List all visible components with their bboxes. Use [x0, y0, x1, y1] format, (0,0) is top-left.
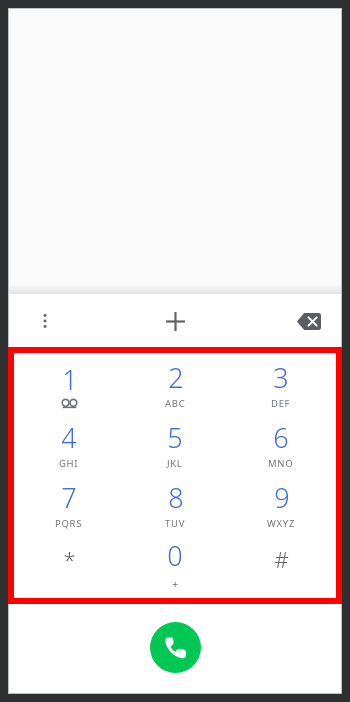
button[interactable]: Add: [151, 297, 199, 345]
button[interactable]: Backspace: [287, 299, 331, 343]
staticText: 0: [167, 537, 183, 574]
staticText: 6: [273, 419, 289, 456]
staticText: 4: [61, 419, 77, 456]
staticText: 1: [62, 361, 78, 398]
staticText: 9: [274, 479, 290, 516]
staticText: DEF: [271, 397, 291, 410]
button[interactable]: 8: [122, 475, 228, 535]
staticText: 8: [168, 479, 184, 516]
button[interactable]: 1: [16, 355, 122, 415]
staticText: *: [63, 544, 76, 574]
staticText: WXYZ: [267, 517, 296, 530]
button[interactable]: 4: [16, 415, 122, 475]
button[interactable]: 5: [122, 415, 228, 475]
button[interactable]: 2: [122, 355, 228, 415]
button[interactable]: 6: [228, 415, 334, 475]
staticText: 7: [61, 479, 77, 516]
button[interactable]: 7: [16, 475, 122, 535]
button[interactable]: 9: [228, 475, 334, 535]
button[interactable]: #: [228, 535, 334, 595]
staticText: #: [274, 544, 289, 574]
button[interactable]: Call: [150, 622, 201, 673]
button[interactable]: *: [16, 535, 122, 595]
staticText: 5: [167, 419, 183, 456]
staticText: PQRS: [55, 517, 83, 530]
button[interactable]: 3: [228, 355, 334, 415]
staticText: 3: [273, 359, 289, 396]
button[interactable]: More options: [23, 299, 67, 343]
staticText: GHI: [59, 457, 79, 470]
button[interactable]: 0: [122, 535, 228, 595]
staticText: JKL: [167, 457, 183, 470]
staticText: ABC: [165, 397, 186, 410]
staticText: 2: [168, 359, 184, 396]
staticText: TUV: [165, 517, 186, 530]
staticText: +: [172, 576, 179, 591]
staticText: MNO: [268, 457, 294, 470]
